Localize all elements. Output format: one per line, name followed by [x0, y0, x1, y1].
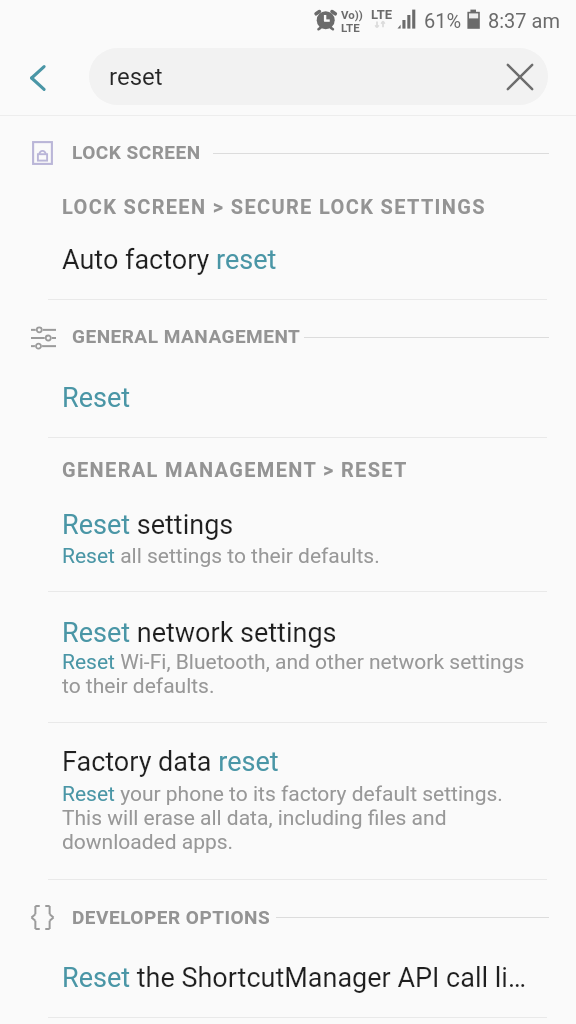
staticText: Reset the ShortcutManager API call li…	[62, 962, 540, 994]
staticText: Vo))	[341, 8, 363, 21]
staticText: 61%	[424, 9, 462, 32]
button[interactable]: Reset the ShortcutManager API call li…	[0, 879, 576, 1017]
staticText: Reset settings	[62, 509, 540, 541]
staticText: Reset network settings	[62, 617, 540, 649]
staticText: DEVELOPER OPTIONS	[72, 906, 322, 928]
staticText: Factory data reset	[62, 746, 540, 778]
staticText: Reset	[62, 382, 540, 414]
staticText: 8:37 am	[488, 9, 560, 32]
button[interactable]: reset	[89, 48, 548, 105]
staticText: Reset Wi-Fi, Bluetooth, and other networ…	[62, 650, 530, 698]
staticText: Reset all settings to their defaults.	[62, 544, 532, 569]
button[interactable]: Reset network settings	[0, 591, 576, 722]
staticText: Reset your phone to its factory default …	[62, 782, 517, 854]
staticText: LOCK SCREEN	[72, 141, 322, 163]
button[interactable]: Navigate up	[14, 40, 62, 116]
staticText: GENERAL MANAGEMENT	[72, 325, 322, 347]
staticText: LTE	[341, 21, 360, 34]
button[interactable]: Reset	[0, 299, 576, 437]
button[interactable]: GENERAL MANAGEMENT > RESET	[0, 437, 576, 591]
staticText: reset	[109, 63, 163, 91]
staticText: Auto factory reset	[62, 244, 540, 276]
button[interactable]: Factory data reset	[0, 722, 576, 879]
button[interactable]: LOCK SCREEN > SECURE LOCK SETTINGS	[0, 116, 576, 299]
staticText: GENERAL MANAGEMENT > RESET	[62, 458, 532, 481]
staticText: LOCK SCREEN > SECURE LOCK SETTINGS	[62, 195, 532, 218]
staticText: LTE	[371, 7, 393, 22]
button[interactable]: Clear search	[491, 48, 548, 105]
